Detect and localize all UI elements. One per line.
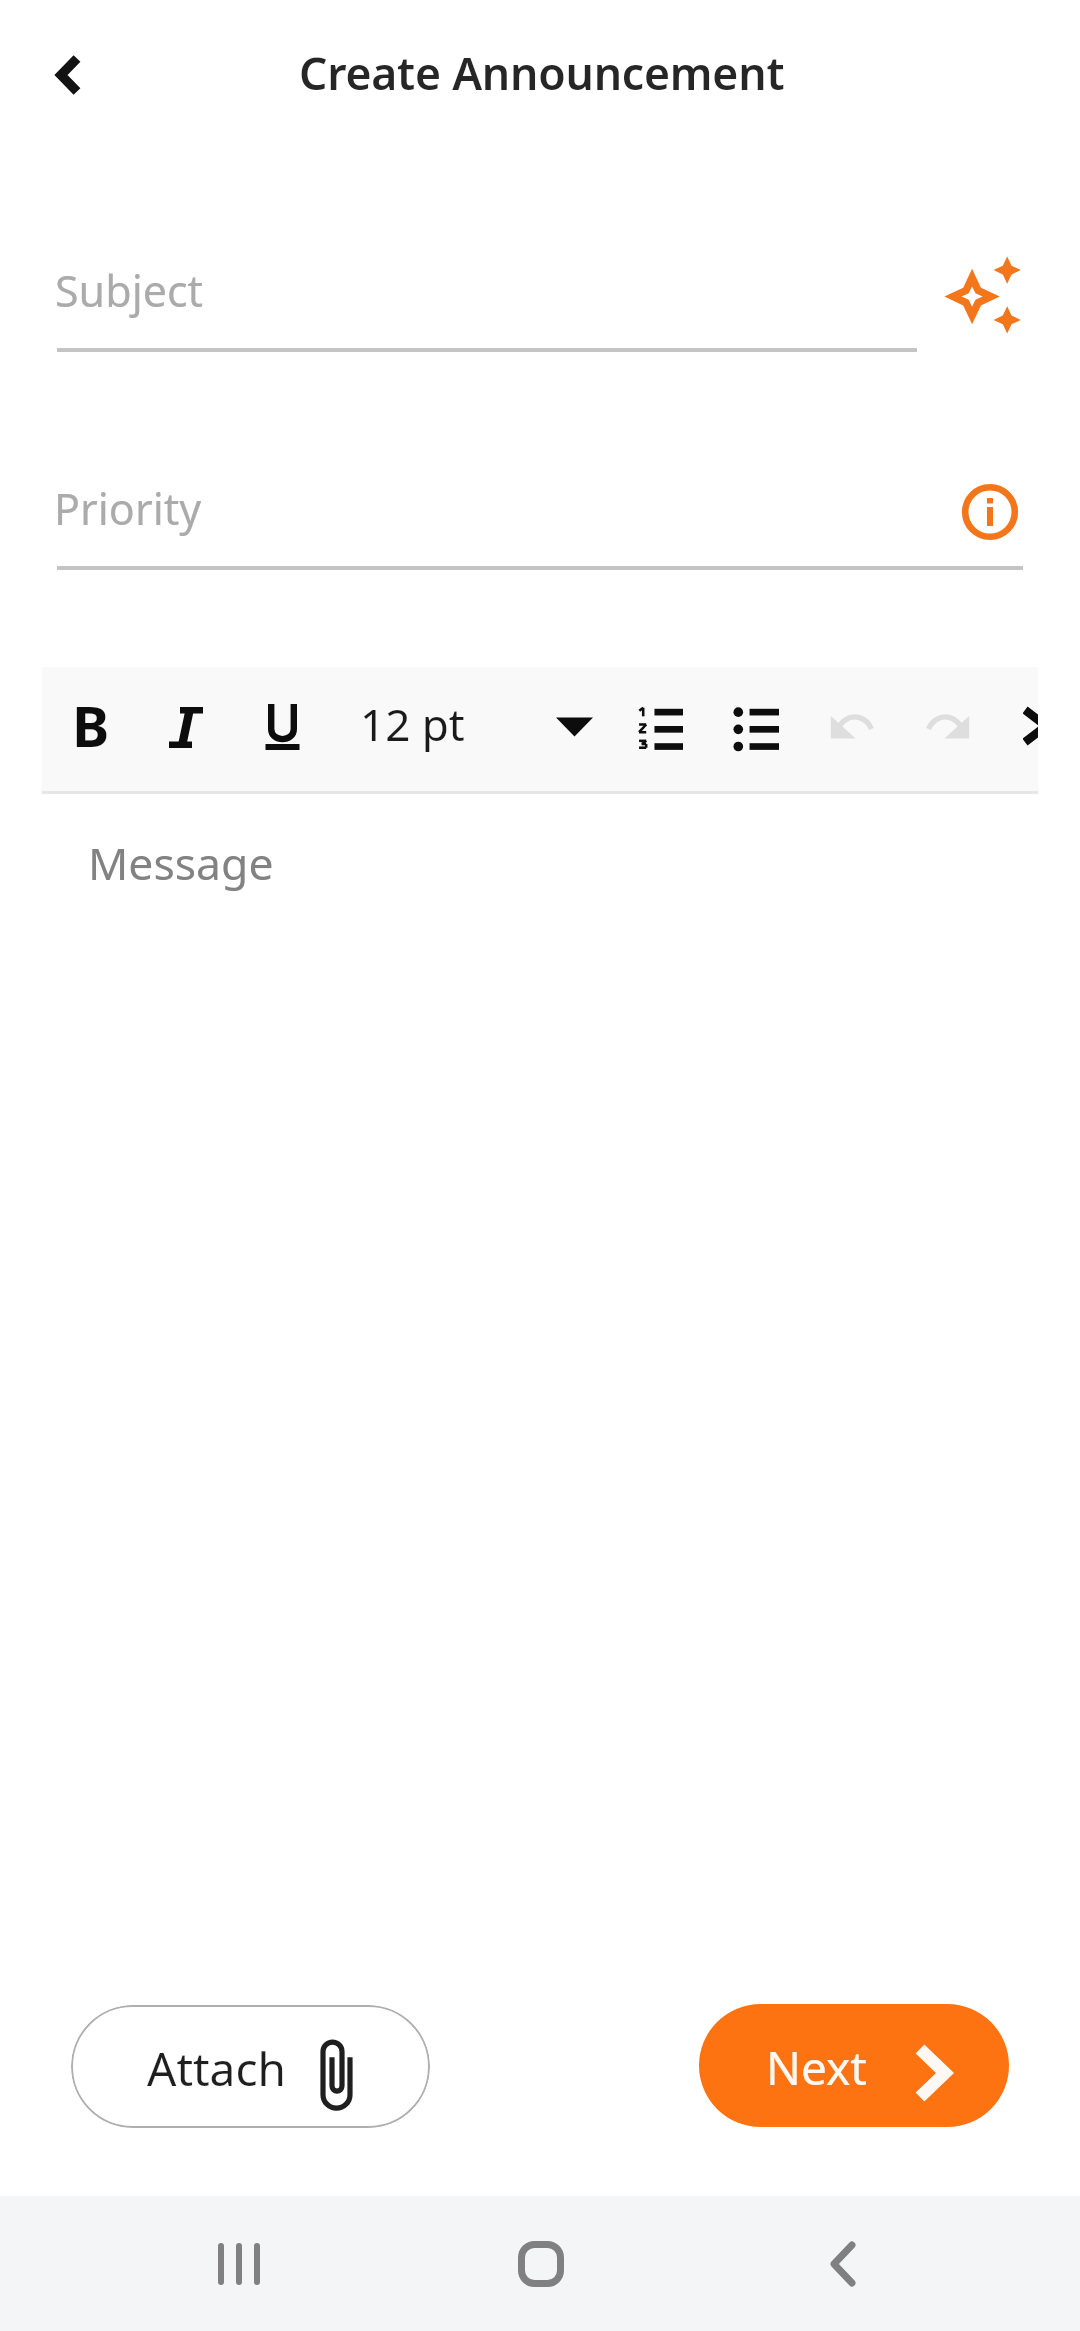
button[interactable]: Numbered list xyxy=(637,706,683,749)
button[interactable]: Recents xyxy=(184,2196,294,2331)
staticText: Priority xyxy=(54,479,202,538)
staticText: Create Announcement xyxy=(299,42,785,103)
button[interactable]: Priority xyxy=(54,456,934,570)
button[interactable]: Undo xyxy=(829,716,875,739)
button[interactable]: Underline xyxy=(265,704,301,754)
button[interactable]: Message xyxy=(42,794,1038,1984)
staticText: Subject xyxy=(55,261,204,320)
button[interactable]: Home xyxy=(486,2196,596,2331)
staticText: Message xyxy=(88,832,274,893)
button[interactable]: Next xyxy=(699,2004,1009,2127)
button[interactable]: Font size xyxy=(548,704,596,752)
button[interactable]: Subject xyxy=(55,238,919,352)
button[interactable]: Attach xyxy=(71,2005,430,2128)
button[interactable]: 12 pt xyxy=(360,694,465,754)
staticText: Attach xyxy=(147,2037,286,2100)
button[interactable]: Priority info xyxy=(955,477,1025,547)
button[interactable]: Redo xyxy=(925,716,971,739)
button[interactable]: Generate with AI xyxy=(944,256,1022,334)
staticText: Next xyxy=(766,2036,867,2099)
button[interactable]: Back xyxy=(788,2196,898,2331)
button[interactable]: Bulleted list xyxy=(733,706,779,749)
button[interactable]: Italic xyxy=(169,706,204,748)
button[interactable]: B xyxy=(72,687,110,763)
button[interactable]: Back xyxy=(29,33,109,117)
